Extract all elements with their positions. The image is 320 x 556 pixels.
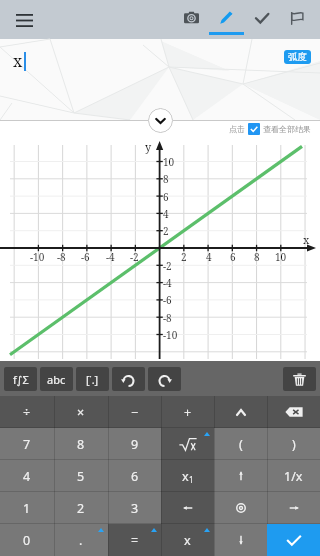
staticText: -6	[81, 250, 90, 264]
staticText: −	[131, 404, 139, 421]
button[interactable]: Menu	[6, 2, 42, 38]
staticText: 4	[206, 250, 212, 264]
staticText: x	[13, 50, 23, 72]
button[interactable]: 2	[54, 492, 108, 524]
staticText: 3	[131, 500, 139, 517]
staticText: -4	[106, 250, 115, 264]
button[interactable]: 0	[0, 524, 54, 556]
button[interactable]: 7	[0, 428, 54, 460]
staticText: 查看全部结果	[263, 124, 311, 134]
staticText: 8	[163, 172, 169, 186]
button[interactable]: Report	[279, 0, 314, 39]
staticText: -8	[163, 311, 172, 325]
button[interactable]: Undo	[112, 367, 145, 391]
button[interactable]: Confirm	[244, 0, 279, 39]
button[interactable]: Draw	[209, 0, 244, 39]
button[interactable]: Solve	[214, 492, 267, 524]
staticText: -10	[163, 328, 178, 342]
staticText: 6	[131, 468, 139, 485]
button[interactable]: Backspace	[267, 396, 320, 428]
button[interactable]: ÷	[0, 396, 54, 428]
staticText: ÷	[23, 404, 31, 421]
staticText: 7	[23, 436, 31, 453]
staticText: -2	[163, 259, 172, 273]
staticText: 10	[275, 250, 287, 264]
staticText: 10	[163, 155, 175, 169]
button[interactable]: 9	[108, 428, 161, 460]
button[interactable]: =	[108, 524, 161, 556]
staticText: +	[184, 404, 192, 421]
staticText: x	[184, 532, 191, 549]
staticText: -4	[163, 276, 172, 290]
staticText: 8	[254, 250, 260, 264]
staticText: 1	[189, 474, 194, 485]
button[interactable]: (	[214, 428, 267, 460]
button[interactable]: Camera	[174, 0, 209, 39]
staticText: .	[79, 532, 83, 549]
button[interactable]: Square root	[161, 428, 214, 460]
button[interactable]: Clear all	[283, 367, 316, 391]
button[interactable]: )	[267, 428, 320, 460]
button[interactable]: x	[161, 524, 214, 556]
button[interactable]: [˙.]	[76, 367, 109, 391]
staticText: 9	[131, 436, 139, 453]
button[interactable]: 8	[54, 428, 108, 460]
staticText: -6	[163, 293, 172, 307]
staticText: 2	[181, 250, 187, 264]
staticText: 6	[230, 250, 236, 264]
staticText: [˙.]	[86, 372, 99, 387]
button[interactable]: Power	[214, 396, 267, 428]
button[interactable]: abc	[40, 367, 73, 391]
button[interactable]: −	[108, 396, 161, 428]
button[interactable]: Move down	[214, 524, 267, 556]
button[interactable]: 1	[0, 492, 54, 524]
staticText: -2	[130, 250, 139, 264]
button[interactable]: 4	[0, 460, 54, 492]
staticText: 2	[163, 224, 169, 238]
staticText: )	[292, 436, 296, 453]
button[interactable]: Expand input	[148, 108, 173, 133]
button[interactable]: 3	[108, 492, 161, 524]
staticText: 0	[23, 532, 31, 549]
button[interactable]: Enter	[267, 524, 320, 556]
staticText: 4	[23, 468, 31, 485]
staticText: ×	[77, 404, 85, 421]
staticText: abc	[47, 372, 66, 387]
button[interactable]: +	[161, 396, 214, 428]
button[interactable]: Move up	[214, 460, 267, 492]
button[interactable]: Move right	[267, 492, 320, 524]
button[interactable]: Redo	[148, 367, 181, 391]
staticText: 8	[77, 436, 85, 453]
staticText: 6	[163, 190, 169, 204]
button[interactable]: .	[54, 524, 108, 556]
button[interactable]: 6	[108, 460, 161, 492]
staticText: 弧度	[288, 51, 307, 63]
staticText: 2	[77, 500, 85, 517]
staticText: 4	[163, 207, 169, 221]
staticText: 点击	[229, 124, 245, 134]
button[interactable]: 点击	[229, 123, 311, 135]
staticText: 1	[23, 500, 31, 517]
button[interactable]: ×	[54, 396, 108, 428]
staticText: x	[303, 232, 310, 247]
button[interactable]: f∫Σ	[4, 367, 37, 391]
button[interactable]: 5	[54, 460, 108, 492]
staticText: -10	[30, 250, 45, 264]
staticText: f∫Σ	[13, 372, 29, 387]
button[interactable]: 弧度	[284, 50, 311, 64]
staticText: 1/x	[284, 468, 303, 485]
button[interactable]: Move left	[161, 492, 214, 524]
staticText: (	[239, 436, 243, 453]
staticText: -8	[57, 250, 66, 264]
staticText: 5	[77, 468, 85, 485]
staticText: =	[131, 532, 139, 549]
button[interactable]: Variable x subscript	[161, 460, 214, 492]
staticText: x	[182, 468, 189, 485]
button[interactable]: 1/x	[267, 460, 320, 492]
staticText: y	[145, 139, 152, 154]
